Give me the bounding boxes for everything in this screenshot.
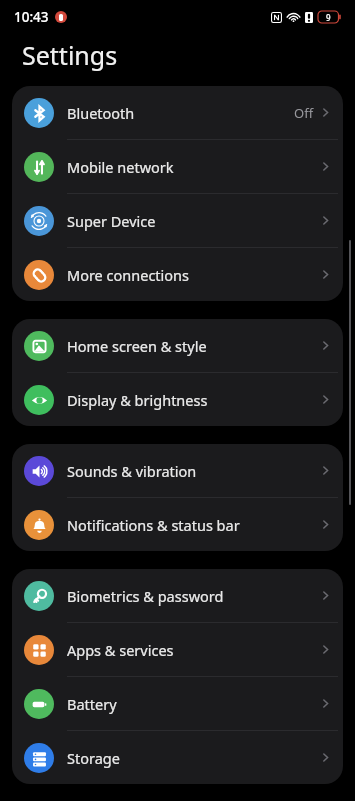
- staticText: 10:43: [14, 8, 49, 26]
- button[interactable]: Sounds & vibration: [12, 444, 343, 497]
- staticText: Battery: [67, 694, 319, 714]
- staticText: Biometrics & password: [67, 586, 319, 606]
- staticText: Super Device: [67, 211, 319, 231]
- other: NFC: [271, 12, 282, 23]
- button[interactable]: Battery: [12, 677, 343, 730]
- button[interactable]: More connections: [12, 248, 343, 301]
- staticText: Home screen & style: [67, 336, 319, 356]
- button[interactable]: Super Device: [12, 194, 343, 247]
- staticText: More connections: [67, 265, 319, 285]
- staticText: Apps & services: [67, 640, 319, 660]
- staticText: Sounds & vibration: [67, 461, 319, 481]
- button[interactable]: Storage: [12, 731, 343, 784]
- staticText: Mobile network: [67, 157, 319, 177]
- button[interactable]: Apps & services: [12, 623, 343, 676]
- staticText: Settings: [22, 38, 118, 72]
- staticText: Off: [294, 104, 314, 122]
- staticText: 9: [326, 12, 331, 23]
- staticText: Bluetooth: [67, 103, 294, 123]
- button[interactable]: Display & brightness: [12, 373, 343, 426]
- button[interactable]: Biometrics & password: [12, 569, 343, 622]
- button[interactable]: Mobile network: [12, 140, 343, 193]
- button[interactable]: Bluetooth: [12, 86, 343, 139]
- staticText: Storage: [67, 748, 319, 768]
- other: Wi-Fi: [287, 11, 300, 24]
- button[interactable]: Home screen & style: [12, 319, 343, 372]
- staticText: Notifications & status bar: [67, 515, 319, 535]
- button[interactable]: Notifications & status bar: [12, 498, 343, 551]
- staticText: Display & brightness: [67, 390, 319, 410]
